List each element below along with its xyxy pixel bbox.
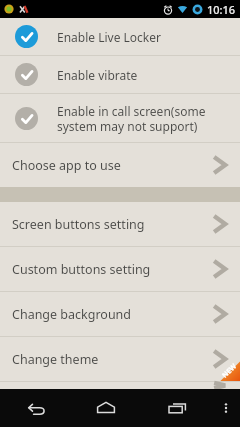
staticText: Enable in call screen(some system may no…	[57, 103, 206, 134]
staticText: Enable vibrate	[57, 67, 138, 83]
staticText: Enable Live Locker	[57, 29, 161, 45]
button[interactable]: Back	[0, 389, 70, 427]
button[interactable]: Enable in call screen(some system may no…	[0, 94, 240, 142]
button[interactable]: Enable Live Locker	[0, 18, 240, 55]
button[interactable]: Change theme	[0, 337, 240, 381]
button[interactable]: Enable vibrate	[0, 56, 240, 93]
button[interactable]: More options	[212, 389, 240, 427]
button[interactable]: Recent apps	[141, 389, 212, 427]
staticText: Change background	[12, 306, 132, 323]
button[interactable]	[0, 382, 240, 389]
staticText: NEW	[220, 361, 239, 381]
button[interactable]: Custom buttons setting	[0, 247, 240, 291]
button[interactable]: Change background	[0, 292, 240, 336]
staticText: Screen buttons setting	[12, 216, 145, 233]
staticText: 10:16	[207, 2, 236, 17]
staticText: Change theme	[12, 351, 99, 368]
staticText: Choose app to use	[12, 157, 121, 174]
button[interactable]: Screen buttons setting	[0, 202, 240, 246]
button[interactable]: Home	[70, 389, 141, 427]
staticText: Custom buttons setting	[12, 261, 151, 278]
button[interactable]: Choose app to use	[0, 143, 240, 187]
